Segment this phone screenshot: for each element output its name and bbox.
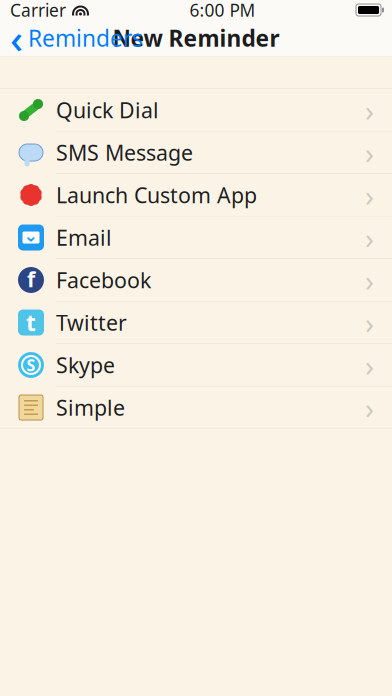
staticText: › (365, 260, 374, 299)
staticText: › (365, 345, 374, 384)
staticText: › (365, 388, 374, 427)
staticText: Skype (56, 351, 115, 379)
staticText: › (365, 133, 374, 172)
button[interactable]: Quick Dial (0, 89, 392, 131)
staticText: Launch Custom App (56, 181, 257, 209)
staticText: Reminders (28, 23, 143, 53)
staticText: Email (56, 223, 112, 252)
staticText: › (365, 175, 374, 214)
staticText: 6:00 PM (189, 0, 255, 21)
button[interactable]: t (0, 301, 392, 344)
button[interactable]: ‹ (0, 20, 151, 56)
staticText: f (27, 265, 35, 293)
staticText: t (26, 307, 36, 337)
staticText: › (365, 218, 374, 257)
staticText: S (26, 354, 35, 376)
staticText: SMS Message (56, 138, 193, 167)
staticText: Facebook (56, 266, 151, 294)
staticText: › (365, 90, 374, 129)
staticText: Twitter (56, 308, 127, 337)
staticText: New Reminder (112, 23, 279, 53)
button[interactable]: Launch Custom App (0, 174, 392, 216)
staticText: › (365, 303, 374, 342)
staticText: Quick Dial (56, 96, 159, 124)
button[interactable]: SMS Message (0, 131, 392, 174)
staticText: Carrier (10, 0, 66, 21)
button[interactable]: ⌄ (0, 216, 392, 259)
staticText: ‹ (10, 11, 23, 64)
button[interactable]: f (0, 259, 392, 301)
staticText: Simple (56, 393, 125, 422)
staticText: ⌄ (23, 226, 38, 245)
button[interactable]: Simple (0, 386, 392, 429)
button[interactable]: S (0, 344, 392, 386)
